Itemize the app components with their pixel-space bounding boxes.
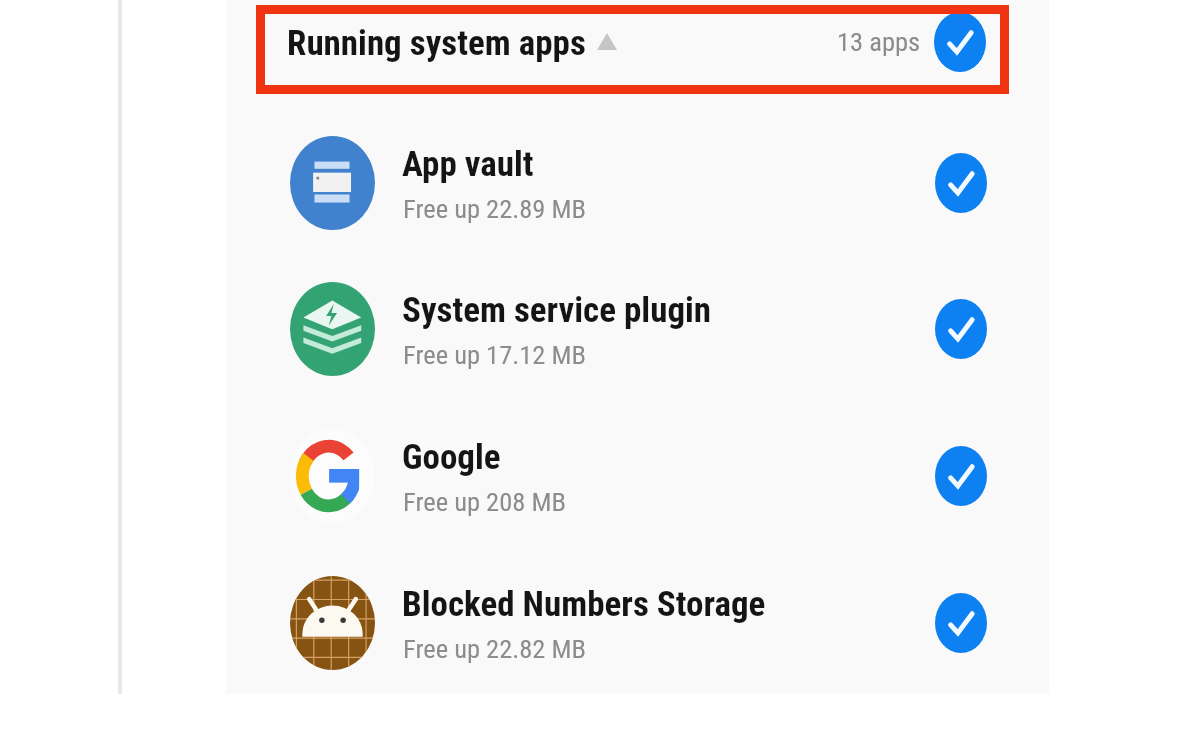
button[interactable]: Running system apps — [226, 0, 1049, 91]
button[interactable]: Selected — [934, 12, 986, 72]
button[interactable]: App vault — [226, 110, 1049, 256]
staticText: Free up 22.89 MB — [403, 193, 587, 224]
staticText: App vault — [402, 144, 534, 185]
staticText: Free up 22.82 MB — [403, 633, 587, 664]
staticText: Free up 17.12 MB — [403, 339, 587, 370]
staticText: Running system apps — [287, 23, 586, 64]
button[interactable]: Selected — [935, 593, 987, 653]
staticText: System service plugin — [402, 290, 712, 331]
button[interactable]: Selected — [935, 299, 987, 359]
staticText: Google — [402, 437, 501, 478]
button[interactable]: Selected — [935, 153, 987, 213]
staticText: 13 apps — [837, 26, 921, 57]
other: Collapse — [597, 33, 617, 50]
button[interactable]: Blocked Numbers Storage — [226, 550, 1049, 696]
button[interactable]: Selected — [935, 446, 987, 506]
staticText: Blocked Numbers Storage — [402, 584, 766, 625]
button[interactable]: Google — [226, 403, 1049, 549]
button[interactable]: System service plugin — [226, 256, 1049, 402]
staticText: Free up 208 MB — [403, 486, 566, 517]
